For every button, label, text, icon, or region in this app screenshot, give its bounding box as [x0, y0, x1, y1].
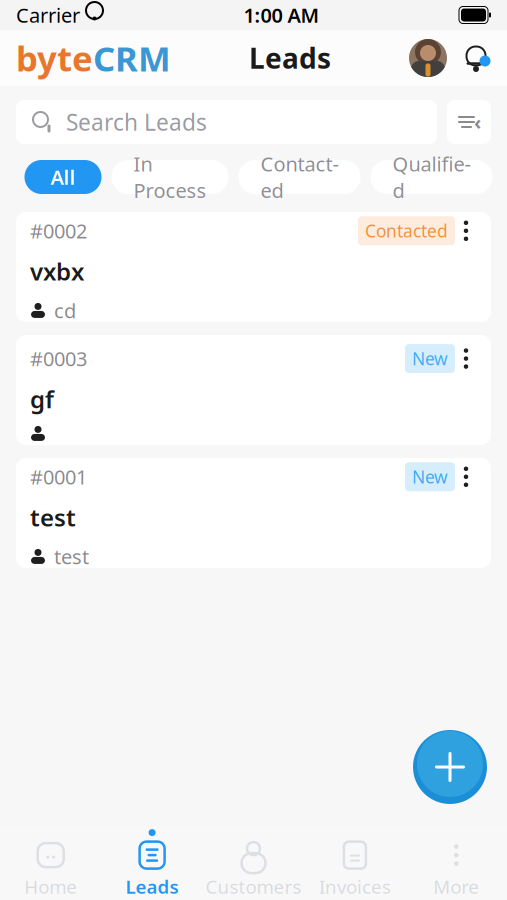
staticText: vxbx — [30, 255, 84, 287]
button[interactable]: Search Leads — [16, 100, 437, 144]
button[interactable]: Add lead — [413, 730, 487, 804]
button[interactable]: Invoices — [304, 829, 406, 899]
staticText: Contacted — [260, 150, 338, 203]
staticText: test — [30, 501, 76, 533]
button[interactable]: More options — [455, 217, 477, 245]
staticText: Leads — [249, 39, 331, 77]
button[interactable]: Qualified — [370, 160, 492, 194]
staticText: Customers — [205, 874, 301, 899]
button[interactable]: More — [406, 829, 507, 899]
button[interactable]: #0001 — [16, 458, 491, 568]
staticText: Invoices — [319, 874, 391, 899]
button[interactable]: More options — [455, 345, 477, 373]
button[interactable]: Profile — [409, 39, 447, 77]
staticText: gf — [30, 383, 54, 415]
staticText: More — [433, 874, 479, 899]
button[interactable]: More options — [455, 463, 477, 491]
staticText: CRM — [93, 35, 171, 81]
staticText: All — [50, 164, 75, 190]
staticText: Contacted — [365, 219, 448, 242]
button[interactable]: Sort and filter — [447, 100, 491, 144]
button[interactable]: Notifications — [461, 43, 491, 73]
staticText: byte — [16, 35, 93, 81]
staticText: Qualified — [392, 150, 470, 203]
staticText: ‹ — [474, 109, 481, 135]
staticText: cd — [54, 297, 76, 324]
staticText: New — [412, 347, 448, 370]
button[interactable]: #0002 — [16, 212, 491, 322]
staticText: Search Leads — [66, 107, 207, 137]
button[interactable]: Home — [0, 829, 101, 899]
button[interactable]: #0003 — [16, 335, 491, 445]
button[interactable]: Leads — [101, 829, 203, 899]
button[interactable]: In Process — [111, 160, 228, 194]
staticText: 1:00 AM — [243, 2, 319, 28]
button[interactable]: Customers — [203, 829, 304, 899]
button[interactable]: All — [24, 160, 101, 194]
staticText: In Process — [133, 150, 206, 203]
staticText: test — [54, 543, 89, 570]
staticText: Carrier — [16, 2, 80, 28]
staticText: #0002 — [30, 217, 87, 244]
staticText: #0001 — [30, 463, 87, 490]
staticText: Leads — [126, 874, 179, 899]
button[interactable]: Contacted — [238, 160, 360, 194]
staticText: Home — [24, 874, 77, 899]
staticText: New — [412, 465, 448, 488]
staticText: #0003 — [30, 345, 87, 372]
